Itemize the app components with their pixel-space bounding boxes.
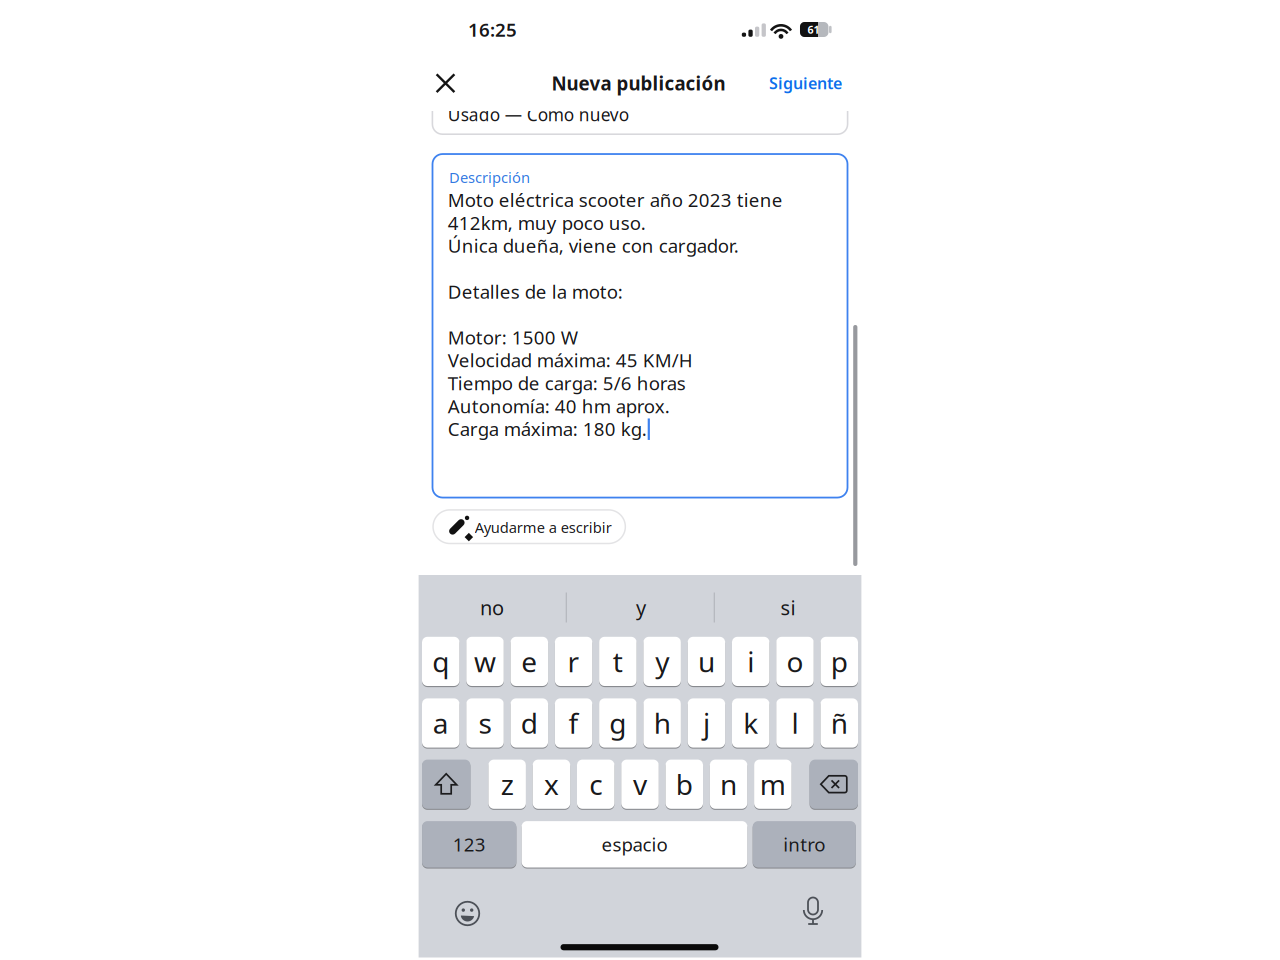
button[interactable]: 123 bbox=[422, 820, 516, 868]
staticText: Motor: 1500 W bbox=[448, 325, 578, 350]
staticText: Moto eléctrica scooter año 2023 tiene bbox=[448, 187, 783, 212]
staticText: Descripción bbox=[449, 167, 530, 187]
button[interactable]: l bbox=[776, 698, 814, 748]
staticText: z bbox=[501, 766, 514, 803]
button[interactable]: g bbox=[599, 698, 637, 748]
staticText: y bbox=[655, 643, 669, 680]
staticText: Nueva publicación bbox=[551, 71, 725, 96]
staticText: f bbox=[569, 704, 579, 742]
staticText: no bbox=[480, 594, 504, 621]
staticText: espacio bbox=[601, 832, 667, 857]
staticText: Autonomía: 40 hm aprox. bbox=[448, 393, 670, 418]
button[interactable]: no bbox=[480, 594, 504, 621]
staticText: ñ bbox=[831, 704, 848, 742]
staticText: Siguiente bbox=[769, 72, 842, 94]
button[interactable]: Siguiente bbox=[769, 72, 842, 94]
staticText: u bbox=[698, 643, 715, 680]
button[interactable]: b bbox=[665, 759, 703, 809]
staticText: r bbox=[568, 643, 580, 680]
staticText: w bbox=[474, 643, 496, 680]
button[interactable]: a bbox=[422, 698, 459, 748]
staticText: j bbox=[703, 704, 710, 742]
button[interactable]: w bbox=[466, 636, 504, 686]
staticText: o bbox=[786, 643, 803, 680]
staticText: 61 bbox=[807, 22, 819, 37]
staticText: y bbox=[636, 594, 646, 621]
button[interactable]: t bbox=[599, 636, 637, 686]
staticText: intro bbox=[783, 832, 825, 857]
staticText: 123 bbox=[453, 832, 486, 857]
button[interactable]: n bbox=[710, 759, 747, 809]
button[interactable]: y bbox=[636, 594, 646, 621]
staticText: 16:25 bbox=[468, 17, 517, 42]
button[interactable]: x bbox=[533, 759, 570, 809]
staticText: 412km, muy poco uso. bbox=[448, 210, 646, 235]
staticText: Ayudarme a escribir bbox=[475, 517, 612, 537]
button[interactable]: d bbox=[511, 698, 548, 748]
button[interactable]: y bbox=[643, 636, 681, 686]
staticText: s bbox=[478, 704, 491, 742]
staticText: Tiempo de carga: 5/6 horas bbox=[448, 371, 686, 395]
staticText: si bbox=[780, 594, 795, 621]
button[interactable]: p bbox=[820, 636, 858, 686]
staticText: x bbox=[544, 766, 559, 803]
button[interactable]: e bbox=[511, 636, 548, 686]
button[interactable]: Ayudarme a escribir bbox=[433, 510, 625, 543]
button[interactable]: Cerrar bbox=[433, 71, 458, 95]
staticText: Velocidad máxima: 45 KM/H bbox=[448, 348, 693, 372]
button[interactable]: v bbox=[621, 759, 659, 809]
button[interactable]: ñ bbox=[820, 698, 858, 748]
staticText: q bbox=[432, 643, 449, 680]
staticText: b bbox=[676, 766, 693, 803]
button[interactable]: i bbox=[732, 636, 769, 686]
staticText: g bbox=[609, 704, 626, 742]
staticText: Única dueña, viene con cargador. bbox=[448, 233, 739, 258]
button[interactable]: z bbox=[488, 759, 526, 809]
button[interactable]: j bbox=[688, 698, 725, 748]
staticText: h bbox=[654, 704, 671, 742]
button[interactable]: f bbox=[555, 698, 592, 748]
staticText: e bbox=[521, 643, 537, 680]
staticText: a bbox=[433, 704, 449, 742]
staticText: p bbox=[831, 643, 848, 680]
staticText: m bbox=[760, 766, 786, 803]
button[interactable]: Borrar bbox=[810, 759, 858, 809]
staticText: t bbox=[613, 643, 623, 680]
button[interactable]: r bbox=[555, 636, 592, 686]
button[interactable]: si bbox=[780, 594, 795, 621]
staticText: Carga máxima: 180 kg. bbox=[448, 416, 647, 441]
staticText: Detalles de la moto: bbox=[448, 279, 623, 304]
button[interactable]: s bbox=[466, 698, 504, 748]
button[interactable]: espacio bbox=[522, 820, 747, 868]
button[interactable]: u bbox=[688, 636, 725, 686]
button[interactable]: Mayúsculas bbox=[422, 759, 470, 809]
button[interactable]: h bbox=[643, 698, 681, 748]
staticText: k bbox=[743, 704, 758, 742]
button[interactable]: m bbox=[754, 759, 792, 809]
staticText: d bbox=[521, 704, 538, 742]
button[interactable]: Dictado bbox=[800, 896, 826, 928]
button[interactable]: q bbox=[422, 636, 459, 686]
staticText: Usado — Como nuevo bbox=[448, 103, 629, 126]
button[interactable]: intro bbox=[753, 820, 856, 868]
button[interactable]: c bbox=[577, 759, 614, 809]
button[interactable]: o bbox=[776, 636, 814, 686]
button[interactable]: k bbox=[732, 698, 769, 748]
button[interactable]: Emoji bbox=[452, 898, 482, 928]
staticText: v bbox=[633, 766, 647, 803]
staticText: n bbox=[720, 766, 737, 803]
staticText: c bbox=[589, 766, 602, 803]
staticText: i bbox=[747, 643, 754, 680]
staticText: l bbox=[791, 704, 798, 742]
